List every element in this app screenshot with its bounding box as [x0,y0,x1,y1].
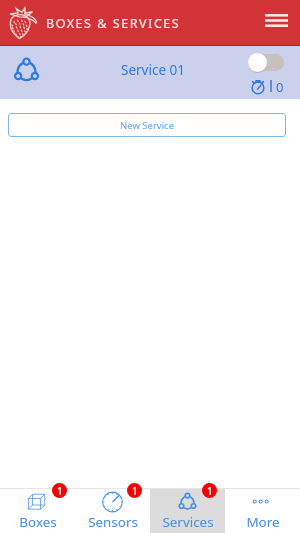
button[interactable]: Boxes [0,489,75,533]
staticText: Service 01 [121,61,185,79]
staticText: 1 [132,484,138,498]
button[interactable]: New Service [8,113,286,137]
staticText: 1 [207,484,213,498]
button[interactable]: Sensors [75,489,150,533]
staticText: Boxes [19,513,57,531]
staticText: BOXES & SERVICES [46,15,181,32]
staticText: New Service [120,119,175,132]
button[interactable]: Toggle service [248,53,284,72]
staticText: Services [162,513,214,531]
staticText: 1 [57,484,63,498]
button[interactable]: Service 01 [0,46,300,99]
button[interactable]: Menu [260,4,292,36]
staticText: Sensors [88,513,138,531]
staticText: 0 [276,78,284,96]
button[interactable]: More [225,489,300,533]
staticText: More [246,513,280,531]
button[interactable]: Services [150,489,225,533]
